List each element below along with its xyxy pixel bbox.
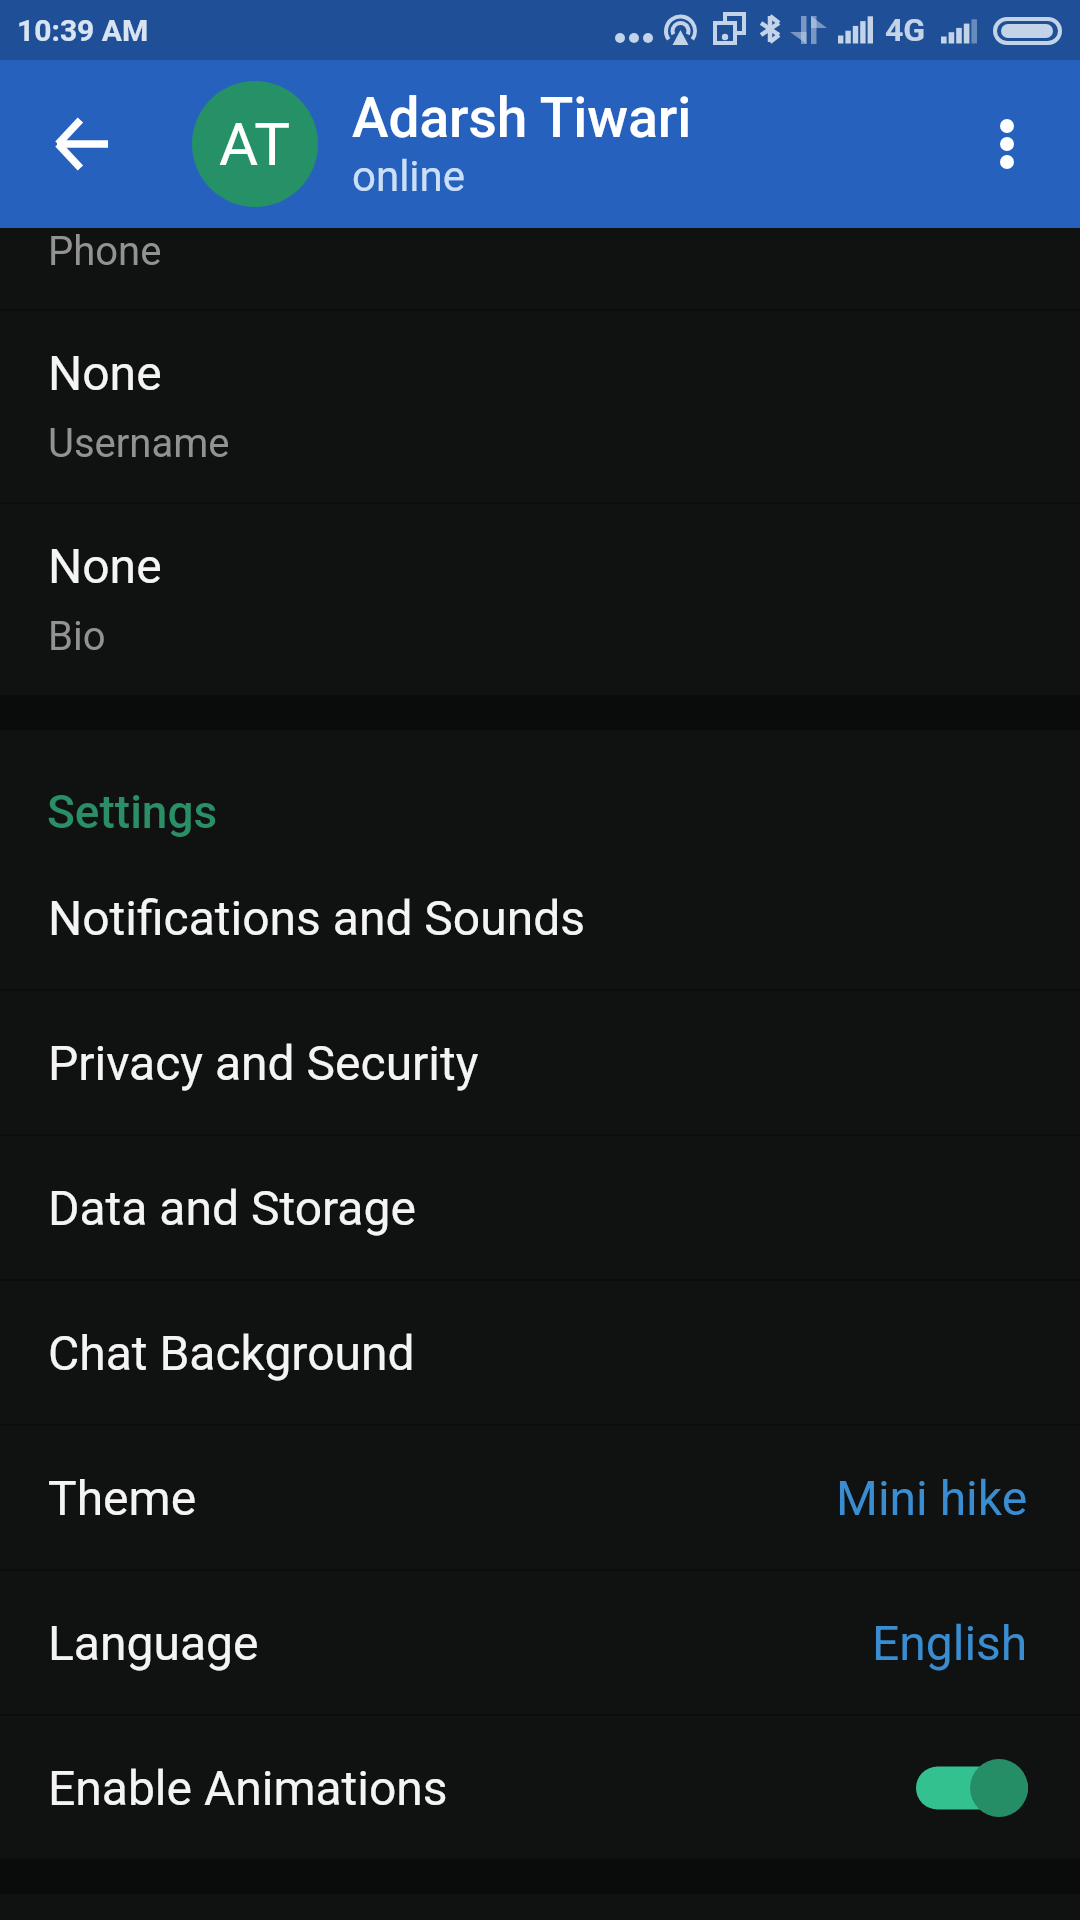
staticText: Enable Animations (48, 1760, 448, 1816)
staticText: Privacy and Security (48, 1035, 479, 1091)
staticText: 10:39 AM (17, 13, 149, 48)
staticText: Notifications and Sounds (48, 890, 586, 946)
button[interactable]: Enable Animations (0, 1716, 1080, 1859)
staticText: Language (48, 1615, 259, 1671)
button[interactable]: Notifications and Sounds (0, 846, 1080, 989)
button[interactable]: Chat Background (0, 1281, 1080, 1424)
button[interactable]: Back (0, 60, 164, 228)
button[interactable]: Data and Storage (0, 1136, 1080, 1279)
staticText: Adarsh Tiwari (352, 86, 692, 150)
staticText: 4G (885, 11, 926, 49)
staticText: Theme (48, 1470, 197, 1526)
button[interactable]: Privacy and Security (0, 991, 1080, 1134)
button[interactable]: None (0, 504, 1080, 695)
staticText: Phone (48, 228, 162, 275)
button[interactable]: Theme (0, 1426, 1080, 1569)
button[interactable]: Language (0, 1571, 1080, 1714)
button[interactable]: Toggle Enable Animations (916, 1758, 1028, 1818)
staticText: None (48, 538, 162, 594)
staticText: online (352, 152, 466, 201)
staticText: Chat Background (48, 1325, 415, 1381)
staticText: Data and Storage (48, 1180, 416, 1236)
button[interactable]: More options (934, 60, 1080, 228)
staticText: Username (48, 420, 230, 467)
staticText: AT (219, 109, 291, 179)
button[interactable]: Phone (0, 228, 1080, 309)
button[interactable]: None (0, 311, 1080, 502)
staticText: None (48, 345, 162, 401)
staticText: Settings (47, 785, 218, 839)
staticText: Mini hike (836, 1470, 1028, 1526)
staticText: English (872, 1615, 1028, 1671)
staticText: Bio (48, 613, 106, 660)
